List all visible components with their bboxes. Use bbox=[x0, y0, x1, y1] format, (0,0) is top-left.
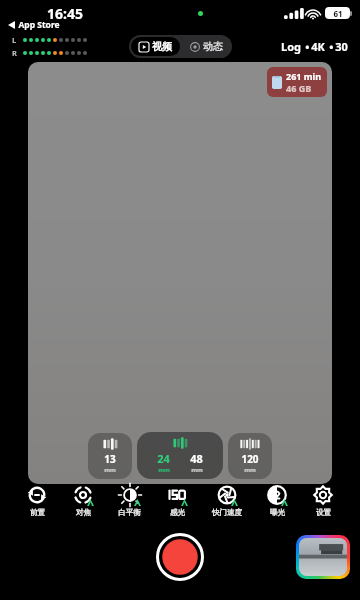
staticText: mm bbox=[244, 466, 256, 474]
staticText: 120 bbox=[241, 452, 259, 466]
staticText: 视频 bbox=[152, 40, 172, 53]
button[interactable]: Log bbox=[281, 39, 348, 54]
staticText: 24 bbox=[157, 451, 170, 466]
button[interactable]: 白平衡 bbox=[116, 482, 143, 519]
staticText: • bbox=[325, 39, 335, 54]
staticText: App Store bbox=[18, 19, 60, 31]
staticText: 白平衡 bbox=[118, 508, 141, 517]
staticText: 30 bbox=[335, 39, 348, 54]
button[interactable]: 13 bbox=[88, 433, 132, 479]
button[interactable]: Last photo bbox=[296, 535, 350, 579]
staticText: 4K bbox=[311, 39, 325, 54]
button[interactable]: 前置 bbox=[24, 482, 50, 519]
staticText: 48 bbox=[190, 451, 203, 466]
button[interactable]: 对焦 bbox=[70, 482, 96, 519]
button[interactable]: 设置 bbox=[310, 482, 336, 519]
button[interactable]: 48 bbox=[190, 451, 203, 474]
staticText: 设置 bbox=[316, 508, 331, 517]
staticText: • bbox=[301, 39, 311, 54]
button[interactable]: 快门速度 bbox=[210, 482, 244, 519]
staticText: 261 min bbox=[286, 70, 322, 82]
staticText: 快门速度 bbox=[212, 508, 242, 517]
staticText: mm bbox=[104, 466, 116, 474]
button[interactable]: 视频 bbox=[131, 37, 180, 56]
staticText: mm bbox=[191, 466, 203, 474]
staticText: 曝光 bbox=[270, 508, 285, 517]
button[interactable]: Record bbox=[156, 533, 204, 581]
staticText: Log bbox=[281, 39, 301, 54]
staticText: 对焦 bbox=[76, 508, 91, 517]
staticText: mm bbox=[158, 466, 170, 474]
button[interactable]: 动态 bbox=[183, 37, 230, 56]
staticText: 动态 bbox=[203, 40, 223, 53]
button[interactable]: 感光 bbox=[164, 482, 190, 519]
staticText: 46 GB bbox=[286, 82, 312, 94]
button[interactable]: 曝光 bbox=[264, 482, 290, 519]
staticText: R bbox=[12, 48, 21, 58]
button[interactable]: 120 bbox=[228, 433, 272, 479]
button[interactable]: Back to App Store bbox=[8, 19, 60, 31]
staticText: 61 bbox=[333, 8, 343, 19]
staticText: L bbox=[12, 35, 21, 45]
button[interactable]: 24 bbox=[157, 451, 170, 474]
staticText: 感光 bbox=[170, 508, 185, 517]
button[interactable]: 24 bbox=[137, 432, 223, 479]
staticText: 前置 bbox=[30, 508, 45, 517]
button[interactable]: 261 min bbox=[267, 67, 327, 97]
staticText: 13 bbox=[104, 452, 116, 466]
staticText: 16:45 bbox=[47, 4, 83, 23]
